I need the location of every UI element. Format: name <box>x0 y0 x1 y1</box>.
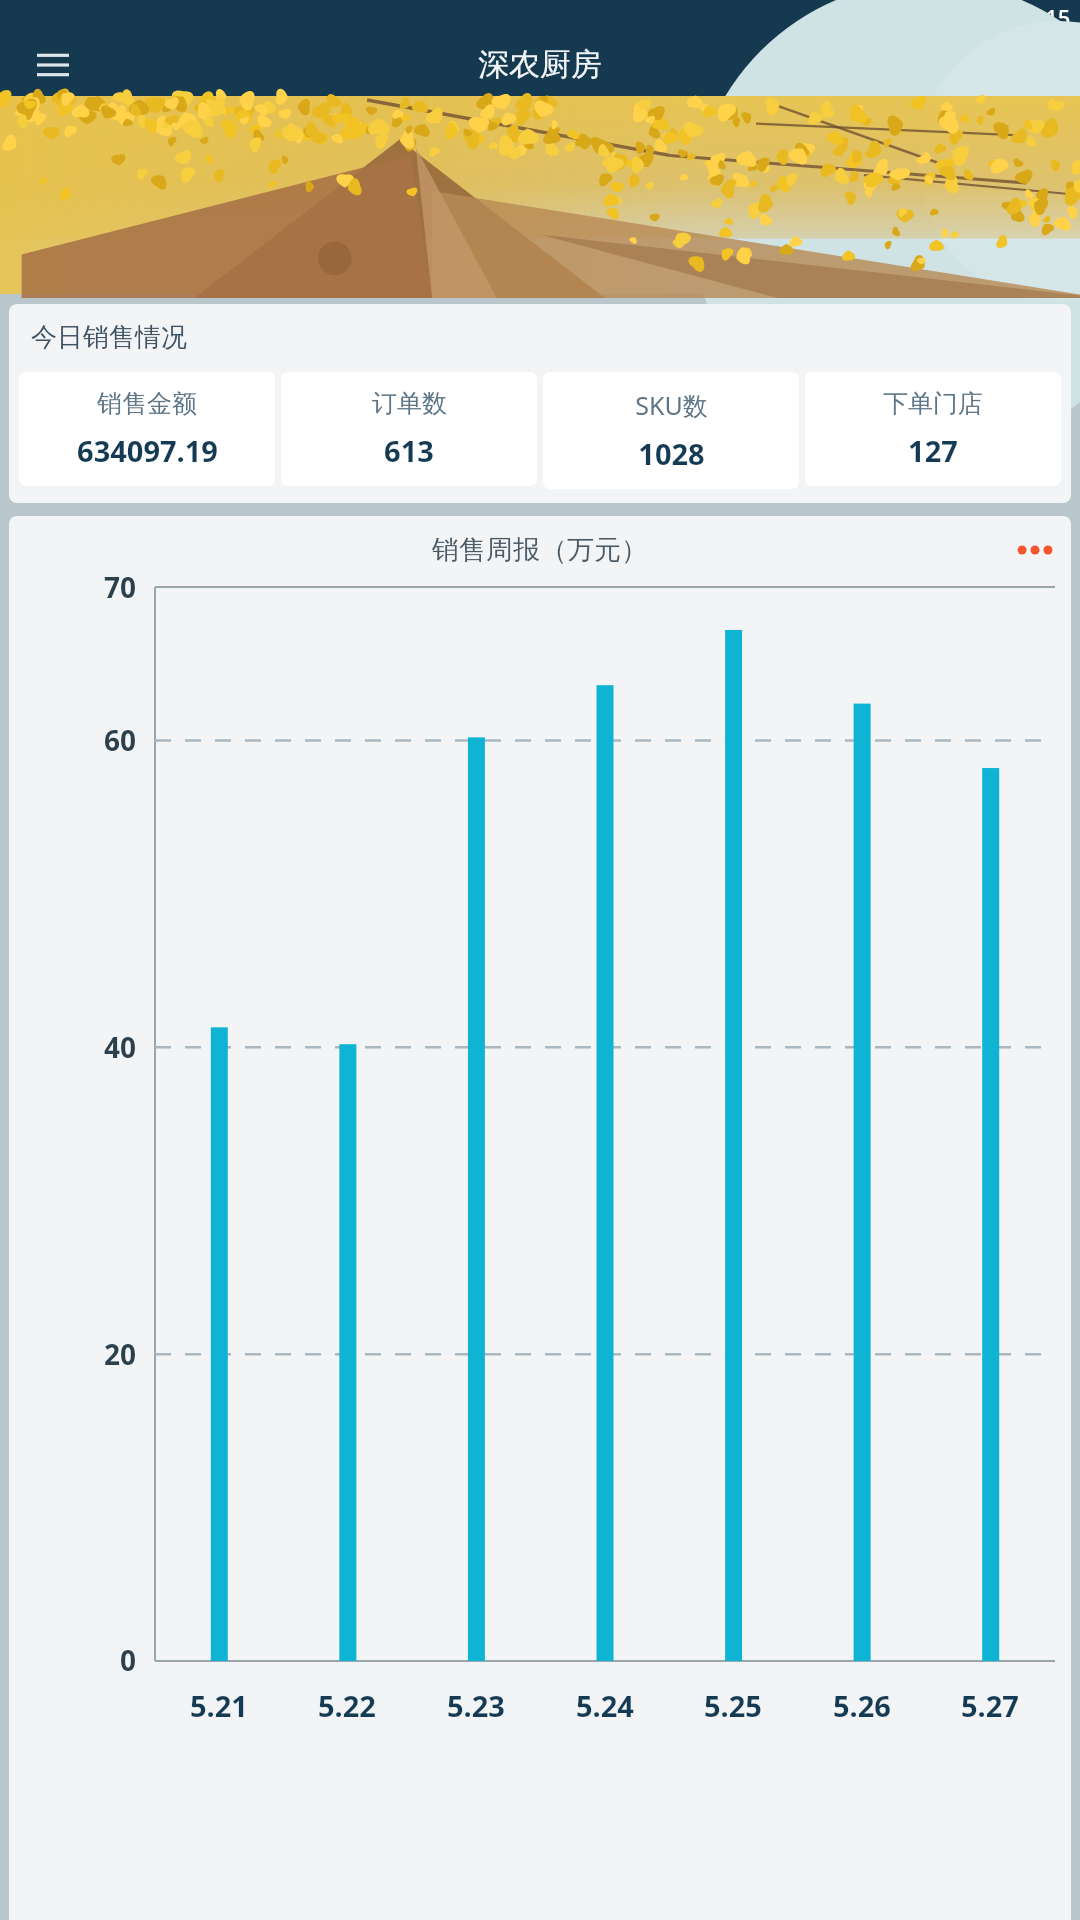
staticText: 60 <box>104 721 137 759</box>
button[interactable]: Open navigation menu <box>30 42 76 88</box>
staticText: 5.25 <box>704 1686 762 1725</box>
staticText: 销售金额 <box>97 388 197 419</box>
staticText: 127 <box>908 431 958 470</box>
staticText: 70 <box>104 568 137 606</box>
staticText: 5.26 <box>833 1686 891 1725</box>
staticText: 销售周报（万元） <box>432 533 648 567</box>
staticText: 订单数 <box>372 388 447 419</box>
button[interactable]: More options <box>1011 533 1059 567</box>
staticText: 20 <box>104 1335 137 1373</box>
staticText: 5.22 <box>318 1686 376 1725</box>
staticText: 11:15 <box>1014 2 1071 32</box>
button[interactable]: 订单数 <box>281 372 537 486</box>
staticText: 0 <box>120 1641 137 1679</box>
staticText: 今日销售情况 <box>31 321 187 354</box>
staticText: SKU数 <box>635 388 708 422</box>
staticText: 5.23 <box>447 1686 505 1725</box>
button[interactable]: 销售金额 <box>19 372 275 486</box>
button[interactable]: SKU数 <box>543 372 799 489</box>
staticText: 613 <box>384 431 434 470</box>
staticText: 5.21 <box>190 1686 248 1725</box>
staticText: 40 <box>104 1028 137 1066</box>
staticText: 5.24 <box>576 1686 634 1725</box>
staticText: 下单门店 <box>883 388 983 419</box>
button[interactable]: 下单门店 <box>805 372 1061 486</box>
button[interactable]: 今日销售情况 <box>9 304 1071 503</box>
staticText: 5.27 <box>961 1686 1019 1725</box>
staticText: 1028 <box>638 434 705 473</box>
staticText: 深农厨房 <box>478 45 602 84</box>
staticText: 634097.19 <box>77 431 218 470</box>
